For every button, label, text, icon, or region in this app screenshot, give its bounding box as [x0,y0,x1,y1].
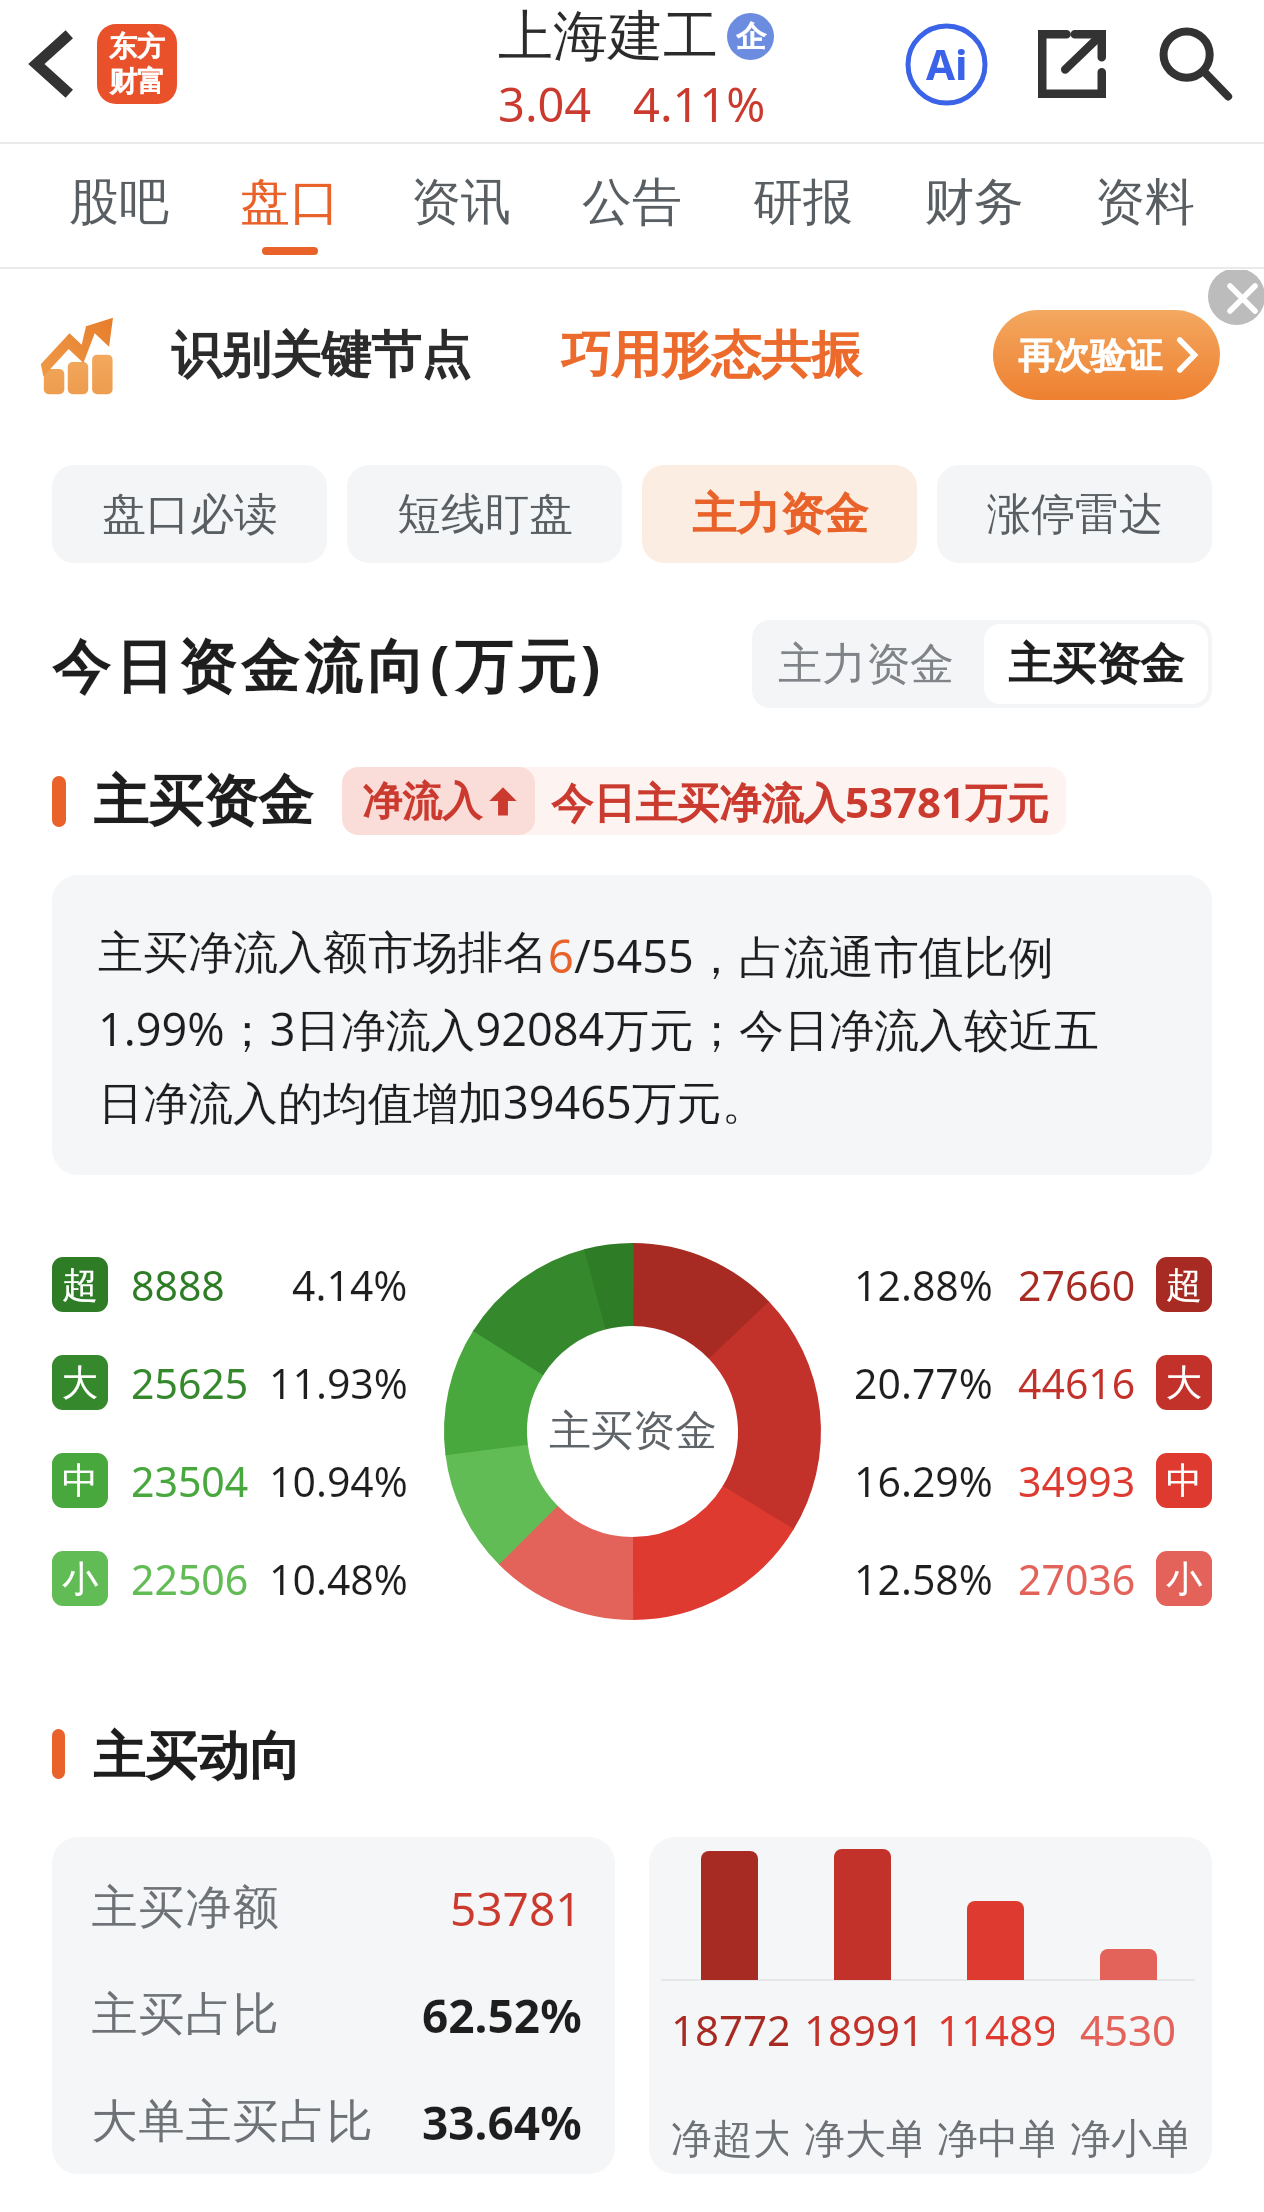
staticText: 净大单 [804,2114,921,2166]
staticText: 44616 [1018,1355,1136,1410]
staticText: 18772 [671,2001,788,2058]
staticText: 净流入 [362,776,482,826]
staticText: 23504 [131,1453,249,1508]
staticText: 大单主买占比 [91,2093,373,2151]
staticText: 小 [62,1556,98,1601]
staticText: 盘口必读 [102,487,278,542]
button[interactable]: 主买净额 [52,1837,615,2174]
staticText: 再次验证 [1018,333,1162,378]
staticText: 4.14% [292,1257,408,1312]
staticText: 20.77% [854,1355,993,1410]
staticText: 62.52% [422,1984,582,2047]
button[interactable]: 研报 [717,143,888,269]
staticText: 研报 [753,171,853,234]
staticText: 涨停雷达 [987,487,1163,542]
staticText: 超 [1166,1262,1202,1307]
button[interactable]: 主买资金 [1008,624,1184,704]
staticText: 盘口 [240,171,340,234]
staticText: 东方 [109,29,165,64]
staticText: 25625 [131,1355,249,1410]
staticText: 净超大 [671,2114,788,2166]
button[interactable]: 18772 [649,1837,1212,2174]
staticText: 27036 [1018,1551,1136,1606]
staticText: 股吧 [69,171,169,234]
staticText: 中 [62,1458,98,1503]
staticText: 3.04 [498,72,592,136]
staticText: 今日资金流向(万元) [52,625,606,704]
staticText: 主买净流入额市场排名 [98,925,548,982]
staticText: 资讯 [411,171,511,234]
staticText: 企 [736,18,766,56]
staticText: 净中单 [937,2114,1054,2166]
staticText: 短线盯盘 [397,487,573,542]
staticText: 12.58% [854,1551,993,1606]
button[interactable]: Share [1002,8,1142,120]
button[interactable]: 盘口 [204,143,375,269]
staticText: 净小单 [1070,2114,1187,2166]
staticText: 18991 [804,2001,921,2058]
staticText: 主买净额 [91,1879,279,1937]
staticText: 主买资金 [549,1405,717,1458]
button[interactable]: Close banner [1208,270,1264,325]
button[interactable]: 盘口必读 [52,465,327,563]
button[interactable]: 股吧 [34,143,204,269]
staticText: 财务 [924,171,1024,234]
staticText: 4.11% [633,72,766,136]
staticText: 34993 [1018,1453,1136,1508]
staticText: 小 [1166,1556,1202,1601]
button[interactable]: 涨停雷达 [937,465,1212,563]
button[interactable]: Back [8,22,92,106]
staticText: 11489 [937,2001,1054,2058]
staticText: 今日主买净流入53781万元 [551,773,1050,830]
staticText: 主买动向 [93,1724,301,1784]
staticText: 巧用形态共振 [561,324,861,387]
staticText: 资料 [1095,171,1195,234]
staticText: 主力资金 [692,487,868,542]
button[interactable]: 东方 [97,24,177,104]
staticText: 上海建工 [498,2,718,71]
button[interactable]: 再次验证 [993,310,1220,400]
button[interactable]: 资料 [1059,143,1230,269]
staticText: 超 [62,1262,98,1307]
button[interactable]: 财务 [888,143,1059,269]
staticText: 6 [548,925,574,986]
button[interactable]: 主力资金 [642,465,917,563]
button[interactable]: 公告 [546,143,717,269]
staticText: 8888 [131,1257,225,1312]
staticText: 1.99%；3日净流入92084万元；今日净流入较近五 [98,998,1100,1059]
staticText: 11.93% [269,1355,408,1410]
button[interactable]: 主力资金 [778,620,954,708]
staticText: 主买资金 [1008,637,1184,692]
staticText: 主买占比 [91,1986,279,2044]
staticText: 4530 [1080,2001,1177,2058]
staticText: Ai [926,35,968,92]
staticText: 识别关键节点 [171,324,471,387]
staticText: 22506 [131,1551,249,1606]
staticText: 大 [1166,1360,1202,1405]
button[interactable]: AI assistant [891,8,1002,120]
staticText: /5455，占流通市值比例 [574,925,1054,986]
staticText: 33.64% [422,2091,582,2154]
staticText: 主力资金 [778,637,954,692]
staticText: 主买资金 [93,767,313,836]
button[interactable]: 资讯 [375,143,546,269]
staticText: 中 [1166,1458,1202,1503]
staticText: 27660 [1018,1257,1136,1312]
staticText: 公告 [582,171,682,234]
staticText: 10.94% [269,1453,408,1508]
staticText: 53781 [450,1877,582,1940]
staticText: 10.48% [269,1551,408,1606]
button[interactable]: 短线盯盘 [347,465,622,563]
button[interactable]: Search [1142,8,1248,120]
staticText: 16.29% [854,1453,993,1508]
staticText: 日净流入的均值增加39465万元。 [98,1071,767,1132]
staticText: 大 [62,1360,98,1405]
staticText: 12.88% [854,1257,993,1312]
staticText: 财富 [109,64,165,99]
